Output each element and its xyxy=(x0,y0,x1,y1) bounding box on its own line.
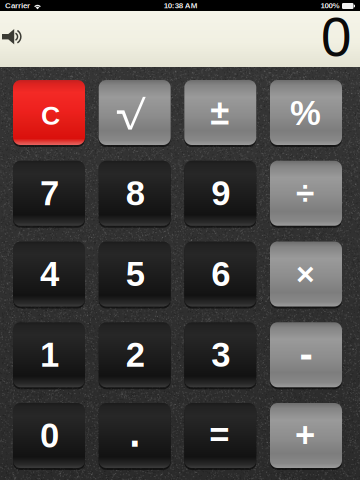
button[interactable]: 4 xyxy=(13,241,85,306)
staticText: ÷ xyxy=(296,175,314,212)
button[interactable]: . xyxy=(99,403,171,468)
staticText: 2 xyxy=(126,335,145,374)
button[interactable]: = xyxy=(184,403,256,468)
button[interactable]: 7 xyxy=(13,161,85,226)
staticText: 10:38 AM xyxy=(164,1,198,10)
button[interactable]: 3 xyxy=(184,322,256,387)
staticText: 3 xyxy=(211,335,230,374)
staticText: 5 xyxy=(126,255,145,293)
button[interactable]: ± xyxy=(184,80,256,145)
staticText: × xyxy=(296,256,315,292)
button[interactable]: Square root xyxy=(99,80,171,145)
button[interactable]: 2 xyxy=(99,322,171,387)
button[interactable]: % xyxy=(270,80,342,145)
button[interactable]: 1 xyxy=(13,322,85,387)
staticText: + xyxy=(295,416,315,454)
staticText: 9 xyxy=(211,174,230,213)
staticText: 0 xyxy=(321,6,351,68)
button[interactable]: C xyxy=(13,80,85,145)
staticText: . xyxy=(129,411,140,455)
staticText: - xyxy=(299,331,312,376)
staticText: 6 xyxy=(211,255,230,293)
staticText: C xyxy=(41,101,60,130)
button[interactable]: 5 xyxy=(99,241,171,306)
button[interactable]: ÷ xyxy=(270,161,342,226)
staticText: 1 xyxy=(40,335,59,374)
button[interactable]: Sound on xyxy=(0,0,30,26)
button[interactable]: 9 xyxy=(184,161,256,226)
staticText: 7 xyxy=(40,174,59,213)
staticText: Carrier xyxy=(5,1,30,10)
button[interactable]: - xyxy=(270,322,342,387)
button[interactable]: 8 xyxy=(99,161,171,226)
button[interactable]: 0 xyxy=(13,403,85,468)
staticText: 8 xyxy=(126,174,145,213)
button[interactable]: 6 xyxy=(184,241,256,306)
staticText: ± xyxy=(210,93,229,132)
staticText: 4 xyxy=(40,255,59,293)
button[interactable]: + xyxy=(270,403,342,468)
button[interactable]: × xyxy=(270,241,342,306)
staticText: 0 xyxy=(40,416,59,455)
staticText: % xyxy=(290,94,321,132)
staticText: = xyxy=(209,416,229,454)
staticText: 100% xyxy=(320,1,339,10)
